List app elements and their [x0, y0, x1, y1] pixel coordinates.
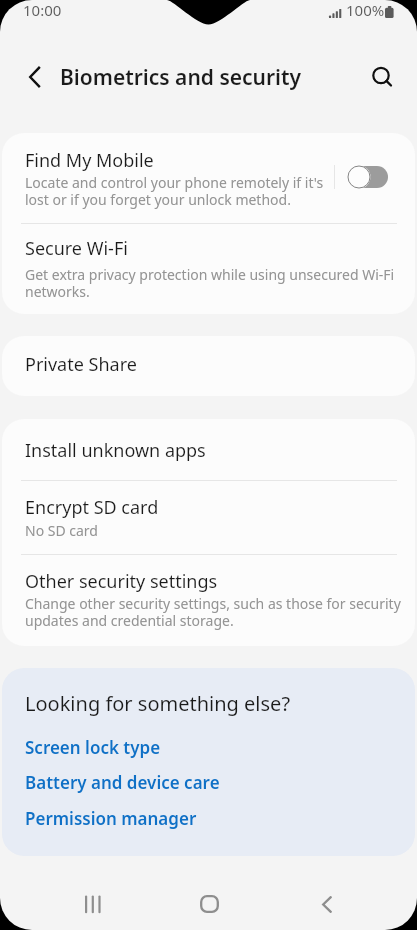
button[interactable]: Home [185, 880, 233, 928]
button[interactable]: Secure Wi-Fi [2, 224, 415, 314]
staticText: Looking for something else? [25, 690, 291, 717]
button[interactable]: Other security settings [2, 555, 415, 646]
staticText: Other security settings [25, 569, 218, 594]
button[interactable]: Install unknown apps [2, 419, 415, 480]
staticText: Battery and device care [25, 771, 220, 794]
button[interactable]: Screen lock type [19, 732, 155, 762]
staticText: Permission manager [25, 807, 197, 830]
staticText: Biometrics and security [60, 63, 302, 92]
button[interactable]: Encrypt SD card [2, 481, 415, 554]
staticText: Find My Mobile [25, 148, 154, 173]
staticText: Change other security settings, such as … [25, 594, 408, 630]
staticText: Secure Wi-Fi [25, 236, 128, 261]
button[interactable]: Battery and device care [19, 767, 214, 797]
button[interactable]: Permission manager [19, 803, 191, 833]
button[interactable]: Navigate up [12, 55, 56, 99]
button[interactable]: Find My Mobile [2, 133, 415, 223]
staticText: Encrypt SD card [25, 495, 159, 520]
staticText: Get extra privacy protection while using… [25, 265, 408, 301]
staticText: 100% [346, 0, 385, 20]
button[interactable]: Search [359, 54, 403, 98]
button[interactable]: Find My Mobile switch, off [348, 166, 388, 188]
staticText: 10:00 [23, 0, 62, 20]
button[interactable]: Recent apps [69, 880, 117, 928]
staticText: Screen lock type [25, 736, 161, 759]
staticText: Install unknown apps [25, 438, 206, 463]
staticText: Private Share [25, 352, 137, 377]
staticText: No SD card [25, 521, 408, 540]
button[interactable]: Private Share [2, 336, 415, 396]
staticText: Locate and control your phone remotely i… [25, 173, 408, 209]
button[interactable]: Back [303, 880, 351, 928]
